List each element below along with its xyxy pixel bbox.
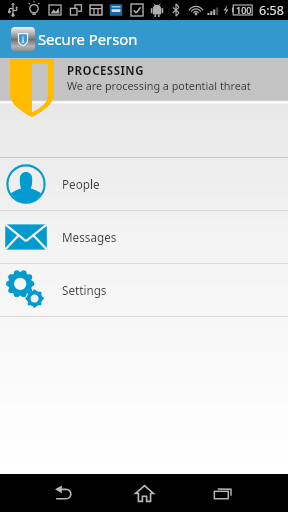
button[interactable]: Settings (0, 264, 288, 316)
staticText: We are processing a potential threat (67, 78, 251, 93)
button[interactable]: PROCESSING (0, 58, 288, 100)
button[interactable]: People (0, 158, 288, 210)
staticText: People (62, 176, 100, 192)
staticText: Secure Person (38, 29, 138, 49)
staticText: Settings (62, 282, 107, 298)
staticText: 100 (236, 4, 252, 16)
button[interactable]: Messages (0, 211, 288, 263)
staticText: 6:58 (259, 2, 284, 19)
button[interactable]: Home (110, 474, 178, 512)
button[interactable]: Recent apps (178, 474, 267, 512)
button[interactable]: Back (18, 474, 110, 512)
staticText: Messages (62, 229, 117, 245)
staticText: PROCESSING (67, 63, 144, 79)
